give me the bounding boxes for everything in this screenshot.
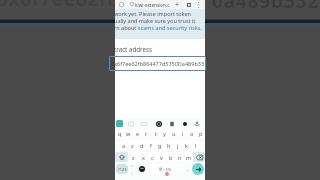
button[interactable]: Tabs — [184, 0, 193, 9]
button[interactable]: z — [128, 152, 138, 162]
button[interactable]: n — [175, 152, 184, 162]
button[interactable]: Shift — [115, 152, 128, 162]
button[interactable]: हिं • EN — [147, 164, 184, 174]
button[interactable]: b — [166, 152, 175, 162]
staticText: h — [167, 142, 171, 149]
button[interactable]: Themes — [128, 121, 134, 127]
staticText: scams and security risks. — [138, 24, 202, 31]
staticText: r — [145, 130, 148, 137]
staticText: 0a489b332 — [212, 0, 320, 14]
button[interactable]: j — [173, 140, 182, 150]
staticText: e — [136, 130, 140, 137]
staticText: k — [185, 142, 188, 149]
button[interactable]: Enter — [192, 163, 204, 175]
staticText: m — [186, 154, 192, 161]
button[interactable]: e — [133, 128, 142, 138]
button[interactable]: s — [128, 140, 137, 150]
staticText: ⋮ — [195, 1, 202, 9]
staticText: n — [178, 154, 182, 161]
staticText: w — [126, 130, 131, 137]
button[interactable]: l — [191, 140, 200, 150]
staticText: q — [118, 130, 122, 137]
button[interactable]: m — [184, 152, 193, 162]
staticText: f — [150, 142, 152, 149]
button[interactable]: Stickers — [182, 121, 188, 127]
button[interactable]: Settings — [156, 121, 162, 127]
button[interactable]: Comma — [129, 164, 135, 174]
button[interactable]: y — [160, 128, 169, 138]
button[interactable]: Period — [185, 164, 191, 174]
staticText: v — [160, 154, 163, 161]
button[interactable]: g — [155, 140, 164, 150]
button[interactable]: d — [137, 140, 146, 150]
staticText: ° — [131, 164, 133, 169]
button[interactable]: New tab — [173, 0, 182, 9]
button[interactable]: u — [169, 128, 178, 138]
button[interactable]: r — [142, 128, 151, 138]
button[interactable]: Backspace — [193, 152, 205, 162]
staticText: d — [140, 142, 144, 149]
button[interactable]: f — [146, 140, 155, 150]
staticText: p — [199, 130, 203, 137]
staticText: b — [169, 154, 173, 161]
button[interactable]: a — [120, 140, 128, 150]
staticText: ?123 — [118, 167, 127, 172]
staticText: 0x6f7ee62fb864477d5750Da489b332 — [111, 60, 206, 67]
button[interactable]: Site info — [130, 2, 134, 6]
staticText: 0x6f7ee62fb86 — [0, 0, 144, 12]
button[interactable]: o — [187, 128, 196, 138]
staticText: work yet. Please import token — [114, 10, 191, 17]
staticText: , — [131, 169, 133, 174]
button[interactable]: GIF — [141, 121, 147, 127]
staticText: u — [172, 130, 176, 137]
staticText: हिं • EN — [159, 167, 172, 172]
staticText: ually and make sure you trust it. — [114, 17, 197, 24]
button[interactable]: q — [115, 128, 124, 138]
staticText: i — [182, 130, 184, 137]
staticText: t — [155, 130, 157, 137]
staticText: j — [177, 142, 179, 149]
button[interactable]: x — [138, 152, 148, 162]
button[interactable]: i — [178, 128, 187, 138]
staticText: tract address — [114, 45, 152, 53]
staticText: rn about — [114, 24, 138, 31]
staticText: s — [131, 142, 134, 149]
staticText: o — [190, 130, 194, 137]
button[interactable]: ?123 — [116, 164, 128, 174]
staticText: . — [187, 166, 189, 173]
button[interactable]: c — [148, 152, 157, 162]
staticText: l — [195, 142, 197, 149]
staticText: y — [163, 130, 166, 137]
button[interactable]: Voice input — [194, 121, 200, 127]
button[interactable]: p — [196, 128, 205, 138]
staticText: c — [151, 154, 154, 161]
button[interactable]: Google — [116, 120, 123, 127]
button[interactable]: 0x6f7ee62fb864477d5750Da489b332 — [109, 56, 206, 71]
button[interactable]: More options — [194, 0, 203, 9]
staticText: kiwi-extension.c — [135, 2, 170, 8]
button[interactable]: v — [157, 152, 166, 162]
button[interactable]: w — [124, 128, 133, 138]
button[interactable]: h — [164, 140, 173, 150]
button[interactable]: Clipboard — [169, 121, 175, 127]
button[interactable]: Emoji — [137, 164, 146, 174]
staticText: a — [122, 142, 126, 149]
button[interactable]: k — [182, 140, 191, 150]
staticText: + — [175, 0, 180, 9]
staticText: z — [132, 154, 135, 161]
button[interactable]: t — [151, 128, 160, 138]
button[interactable]: Home — [119, 2, 124, 7]
staticText: g — [158, 142, 162, 149]
staticText: x — [142, 154, 145, 161]
